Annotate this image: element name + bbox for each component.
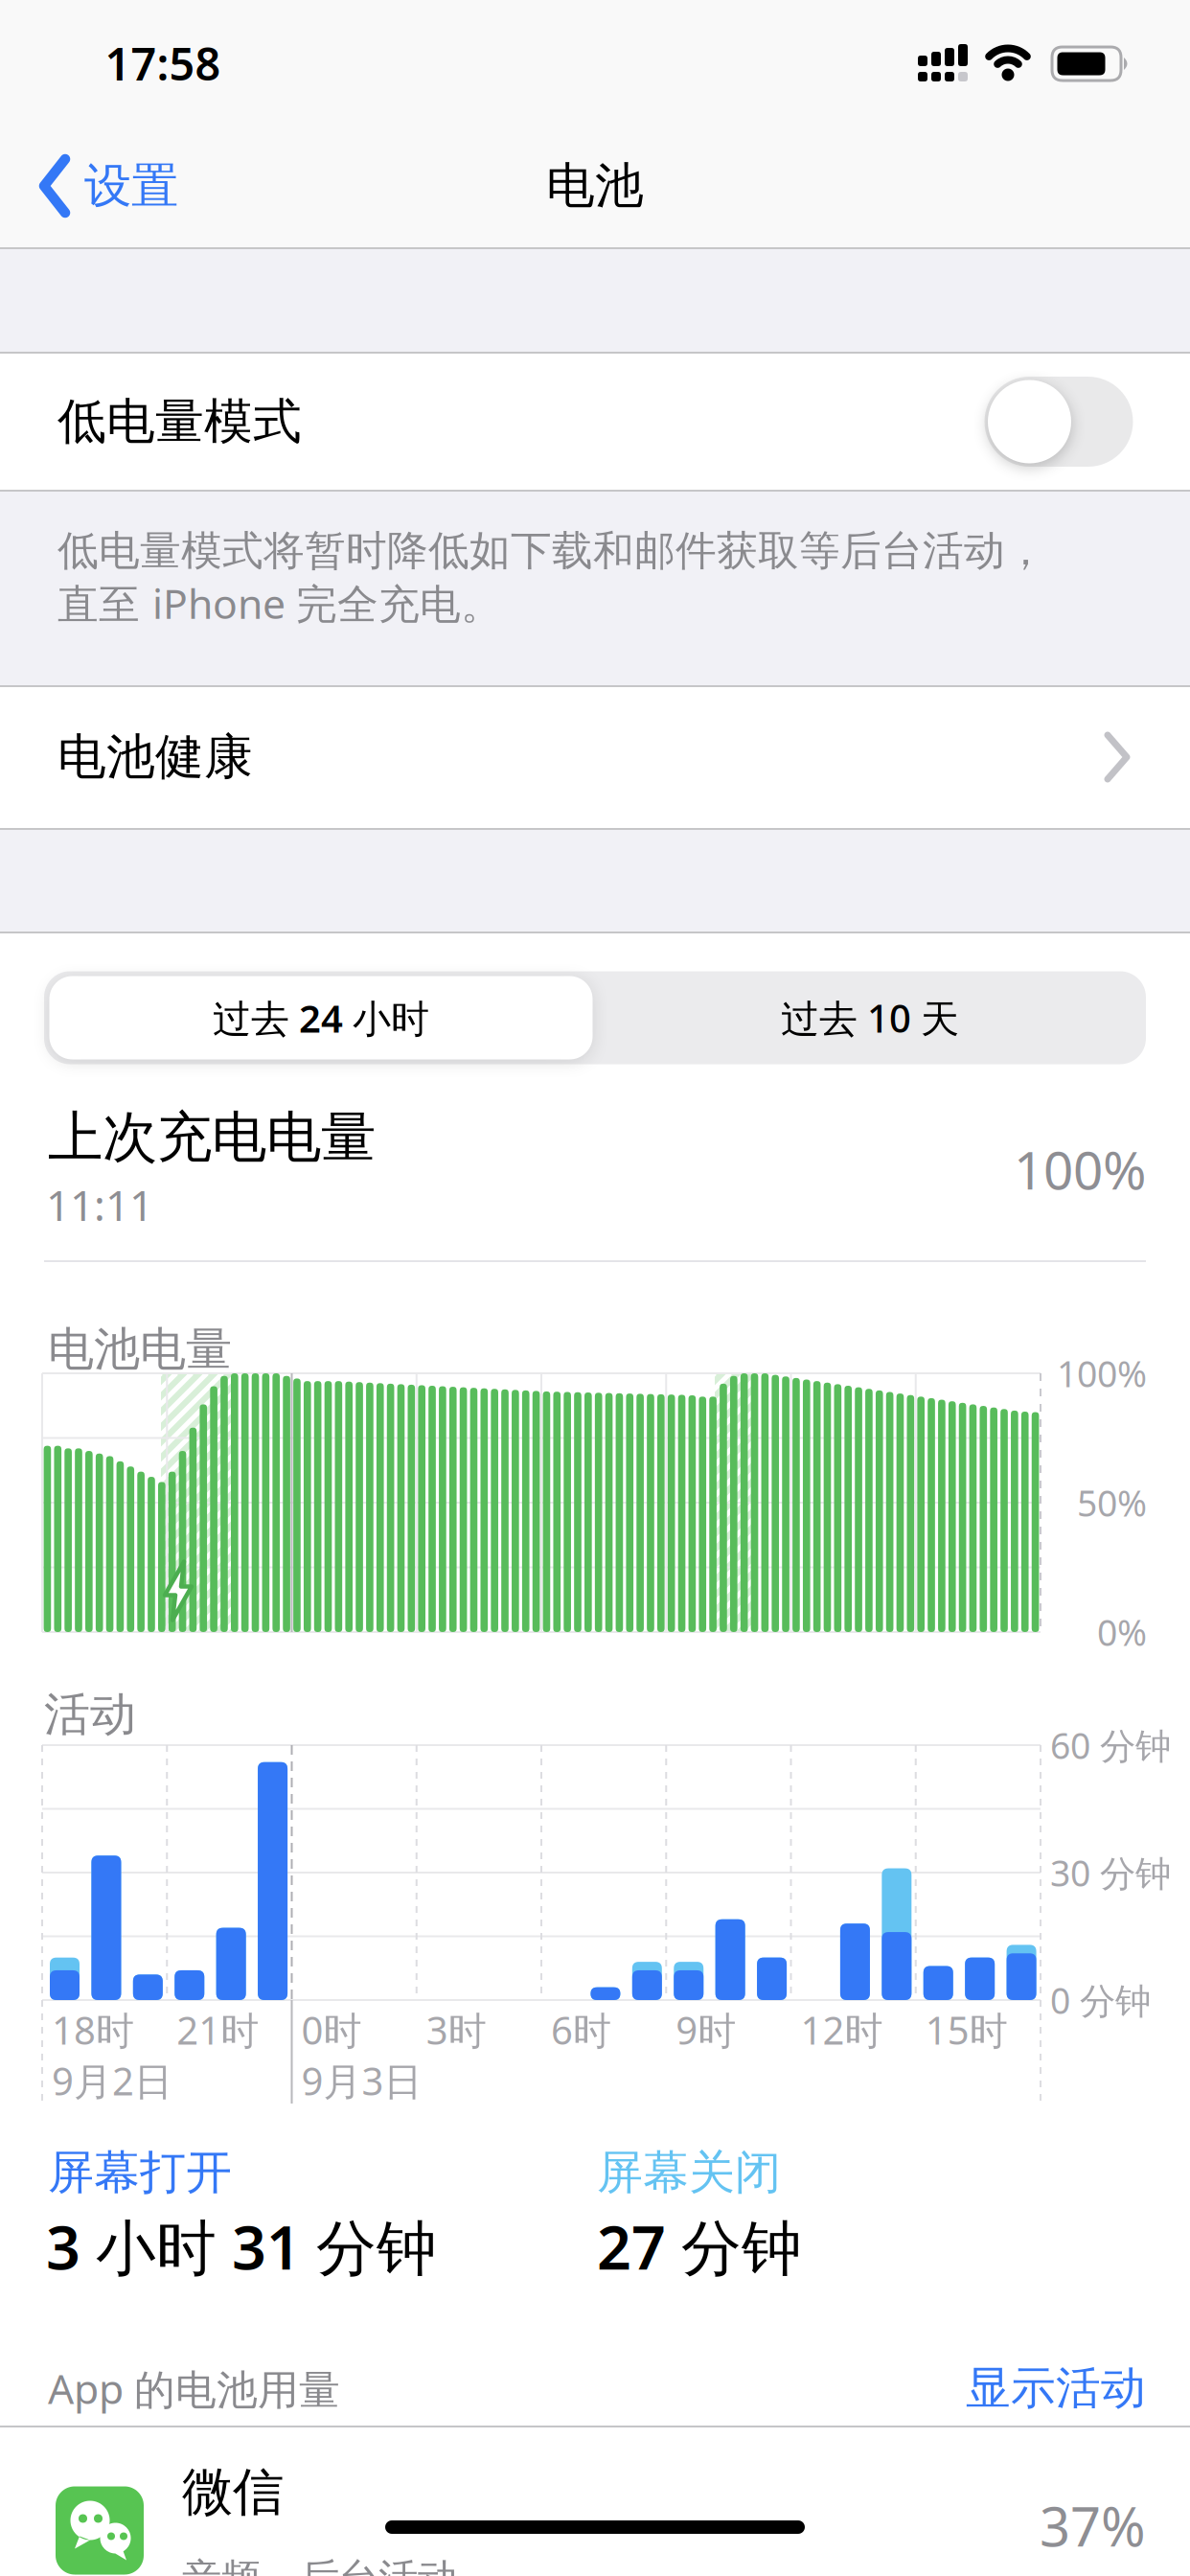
staticText: 活动 — [44, 1686, 136, 1743]
staticText: 过去 10 天 — [781, 992, 959, 1043]
staticText: 低电量模式将暂时降低如下载和邮件获取等后台活动， — [57, 526, 1046, 576]
staticText: 9时 — [676, 2004, 736, 2055]
staticText: 电池电量 — [48, 1321, 232, 1378]
staticText: 0 分钟 — [1050, 1976, 1151, 2024]
staticText: 50% — [1077, 1479, 1147, 1526]
staticText: 0时 — [301, 2004, 362, 2055]
staticText: 音频，后台活动 — [182, 2554, 457, 2576]
staticText: 过去 24 小时 — [213, 992, 429, 1043]
staticText: 电池 — [546, 156, 644, 216]
button[interactable]: 电池健康 — [0, 687, 1190, 828]
staticText: 微信 — [182, 2461, 284, 2523]
staticText: 27 分钟 — [597, 2206, 802, 2286]
staticText: 21时 — [176, 2004, 259, 2055]
staticText: 9月2日 — [52, 2055, 172, 2106]
staticText: 100% — [1057, 1350, 1147, 1397]
staticText: 屏幕关闭 — [597, 2144, 781, 2201]
staticText: 上次充电电量 — [48, 1104, 376, 1171]
staticText: 0% — [1097, 1608, 1147, 1656]
staticText: 6时 — [551, 2004, 611, 2055]
staticText: 9月3日 — [301, 2055, 422, 2106]
staticText: 电池健康 — [57, 727, 253, 787]
staticText: 60 分钟 — [1050, 1721, 1171, 1769]
staticText: 37% — [1040, 2490, 1146, 2561]
staticText: 3时 — [426, 2004, 487, 2055]
staticText: 低电量模式 — [57, 392, 302, 451]
button[interactable]: 设置 — [38, 154, 178, 218]
staticText: 11:11 — [46, 1177, 153, 1233]
staticText: 17:58 — [105, 34, 221, 93]
button[interactable]: 过去 10 天 — [602, 975, 1138, 1061]
staticText: 12时 — [801, 2004, 883, 2055]
button[interactable]: 过去 24 小时 — [49, 976, 593, 1059]
staticText: 3 小时 31 分钟 — [46, 2206, 437, 2286]
button[interactable]: 微信 — [0, 2451, 1190, 2576]
staticText: 100% — [1014, 1134, 1146, 1204]
button[interactable]: 低电量模式 — [0, 354, 1190, 490]
staticText: App 的电池用量 — [48, 2361, 340, 2415]
staticText: 18时 — [52, 2004, 134, 2055]
staticText: 直至 iPhone 完全充电。 — [57, 576, 502, 630]
staticText: 屏幕打开 — [48, 2144, 232, 2201]
staticText: 30 分钟 — [1050, 1849, 1171, 1896]
staticText: 15时 — [925, 2004, 1008, 2055]
staticText: 设置 — [84, 157, 178, 215]
staticText: 显示活动 — [966, 2361, 1146, 2416]
button[interactable]: 显示活动 — [858, 2361, 1146, 2416]
